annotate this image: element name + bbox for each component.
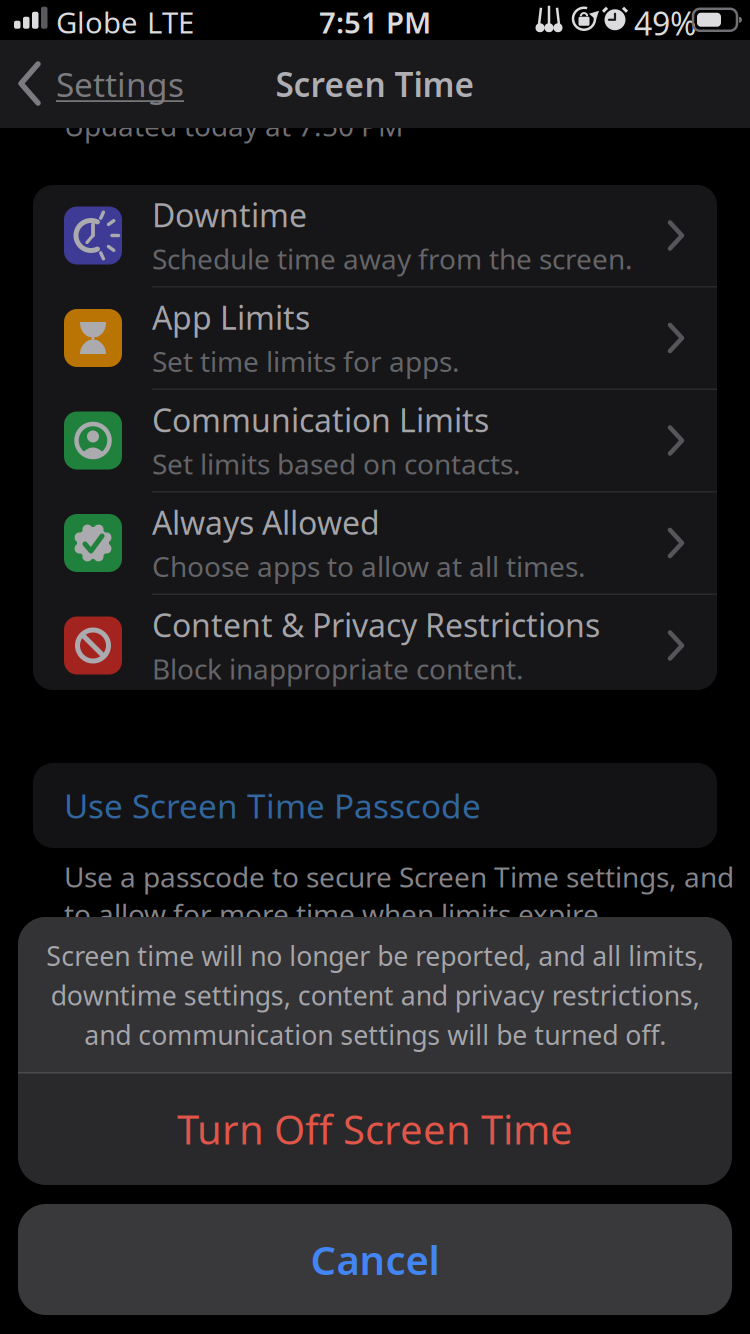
button[interactable]: Turn Off Screen Time xyxy=(18,1073,732,1185)
staticText: Use Screen Time Passcode xyxy=(64,783,481,828)
staticText: Block inappropriate content. xyxy=(152,650,524,687)
staticText: Schedule time away from the screen. xyxy=(152,240,633,277)
staticText: Screen time will no longer be reported, … xyxy=(46,938,704,1052)
staticText: Set time limits for apps. xyxy=(152,343,460,380)
button[interactable]: Use Screen Time Passcode xyxy=(33,763,717,848)
button[interactable]: Back to Settings xyxy=(18,40,184,128)
button[interactable]: Communication Limits xyxy=(33,390,717,491)
button[interactable]: Downtime xyxy=(33,185,717,286)
staticText: Always Allowed xyxy=(152,501,380,544)
staticText: 49% xyxy=(634,2,697,44)
staticText: Turn Off Screen Time xyxy=(177,1102,573,1155)
staticText: App Limits xyxy=(152,296,310,339)
staticText: Screen Time xyxy=(275,62,474,106)
staticText: Communication Limits xyxy=(152,399,489,441)
button[interactable]: Always Allowed xyxy=(33,492,717,593)
staticText: Downtime xyxy=(152,194,307,236)
staticText: Cancel xyxy=(310,1233,439,1286)
staticText: Use a passcode to secure Screen Time set… xyxy=(64,858,734,932)
staticText: LTE xyxy=(147,3,194,42)
staticText: Choose apps to allow at all times. xyxy=(152,548,586,585)
button[interactable]: Cancel xyxy=(18,1204,732,1315)
staticText: Settings xyxy=(56,62,184,106)
staticText: 7:51 PM xyxy=(319,3,431,42)
button[interactable]: App Limits xyxy=(33,287,717,388)
button[interactable]: Content & Privacy Restrictions xyxy=(33,595,717,696)
staticText: Content & Privacy Restrictions xyxy=(152,604,600,646)
staticText: Set limits based on contacts. xyxy=(152,445,521,482)
staticText: Globe xyxy=(56,3,138,42)
staticText: Updated today at 7:50 PM xyxy=(64,107,403,144)
